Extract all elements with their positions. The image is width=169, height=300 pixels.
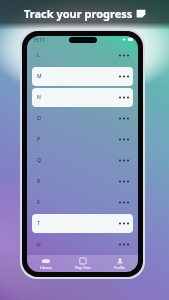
- staticText: R: [37, 178, 41, 185]
- button[interactable]: T: [32, 214, 133, 233]
- staticText: T: [37, 220, 40, 227]
- staticText: P: [37, 136, 41, 143]
- button[interactable]: Library: [27, 255, 64, 272]
- button[interactable]: L: [32, 46, 133, 65]
- staticText: Profile: [114, 265, 125, 270]
- staticText: Q: [37, 157, 41, 164]
- button[interactable]: Profile: [101, 255, 138, 272]
- button[interactable]: R: [32, 172, 133, 191]
- button[interactable]: Q: [32, 151, 133, 170]
- button[interactable]: N: [32, 88, 133, 107]
- staticText: Play Pass: [75, 265, 91, 270]
- button[interactable]: O: [32, 109, 133, 128]
- staticText: Library: [40, 265, 52, 270]
- button[interactable]: Play Pass: [64, 255, 101, 272]
- staticText: U: [37, 241, 41, 248]
- button[interactable]: M: [32, 67, 133, 86]
- staticText: S: [37, 199, 40, 206]
- button[interactable]: U: [32, 235, 133, 254]
- staticText: M: [37, 73, 42, 80]
- staticText: 15:17: [33, 37, 45, 43]
- staticText: Track your progress: [24, 6, 133, 21]
- button[interactable]: P: [32, 130, 133, 149]
- staticText: O: [37, 115, 41, 122]
- button[interactable]: S: [32, 193, 133, 212]
- staticText: L: [37, 52, 40, 59]
- staticText: N: [37, 94, 41, 101]
